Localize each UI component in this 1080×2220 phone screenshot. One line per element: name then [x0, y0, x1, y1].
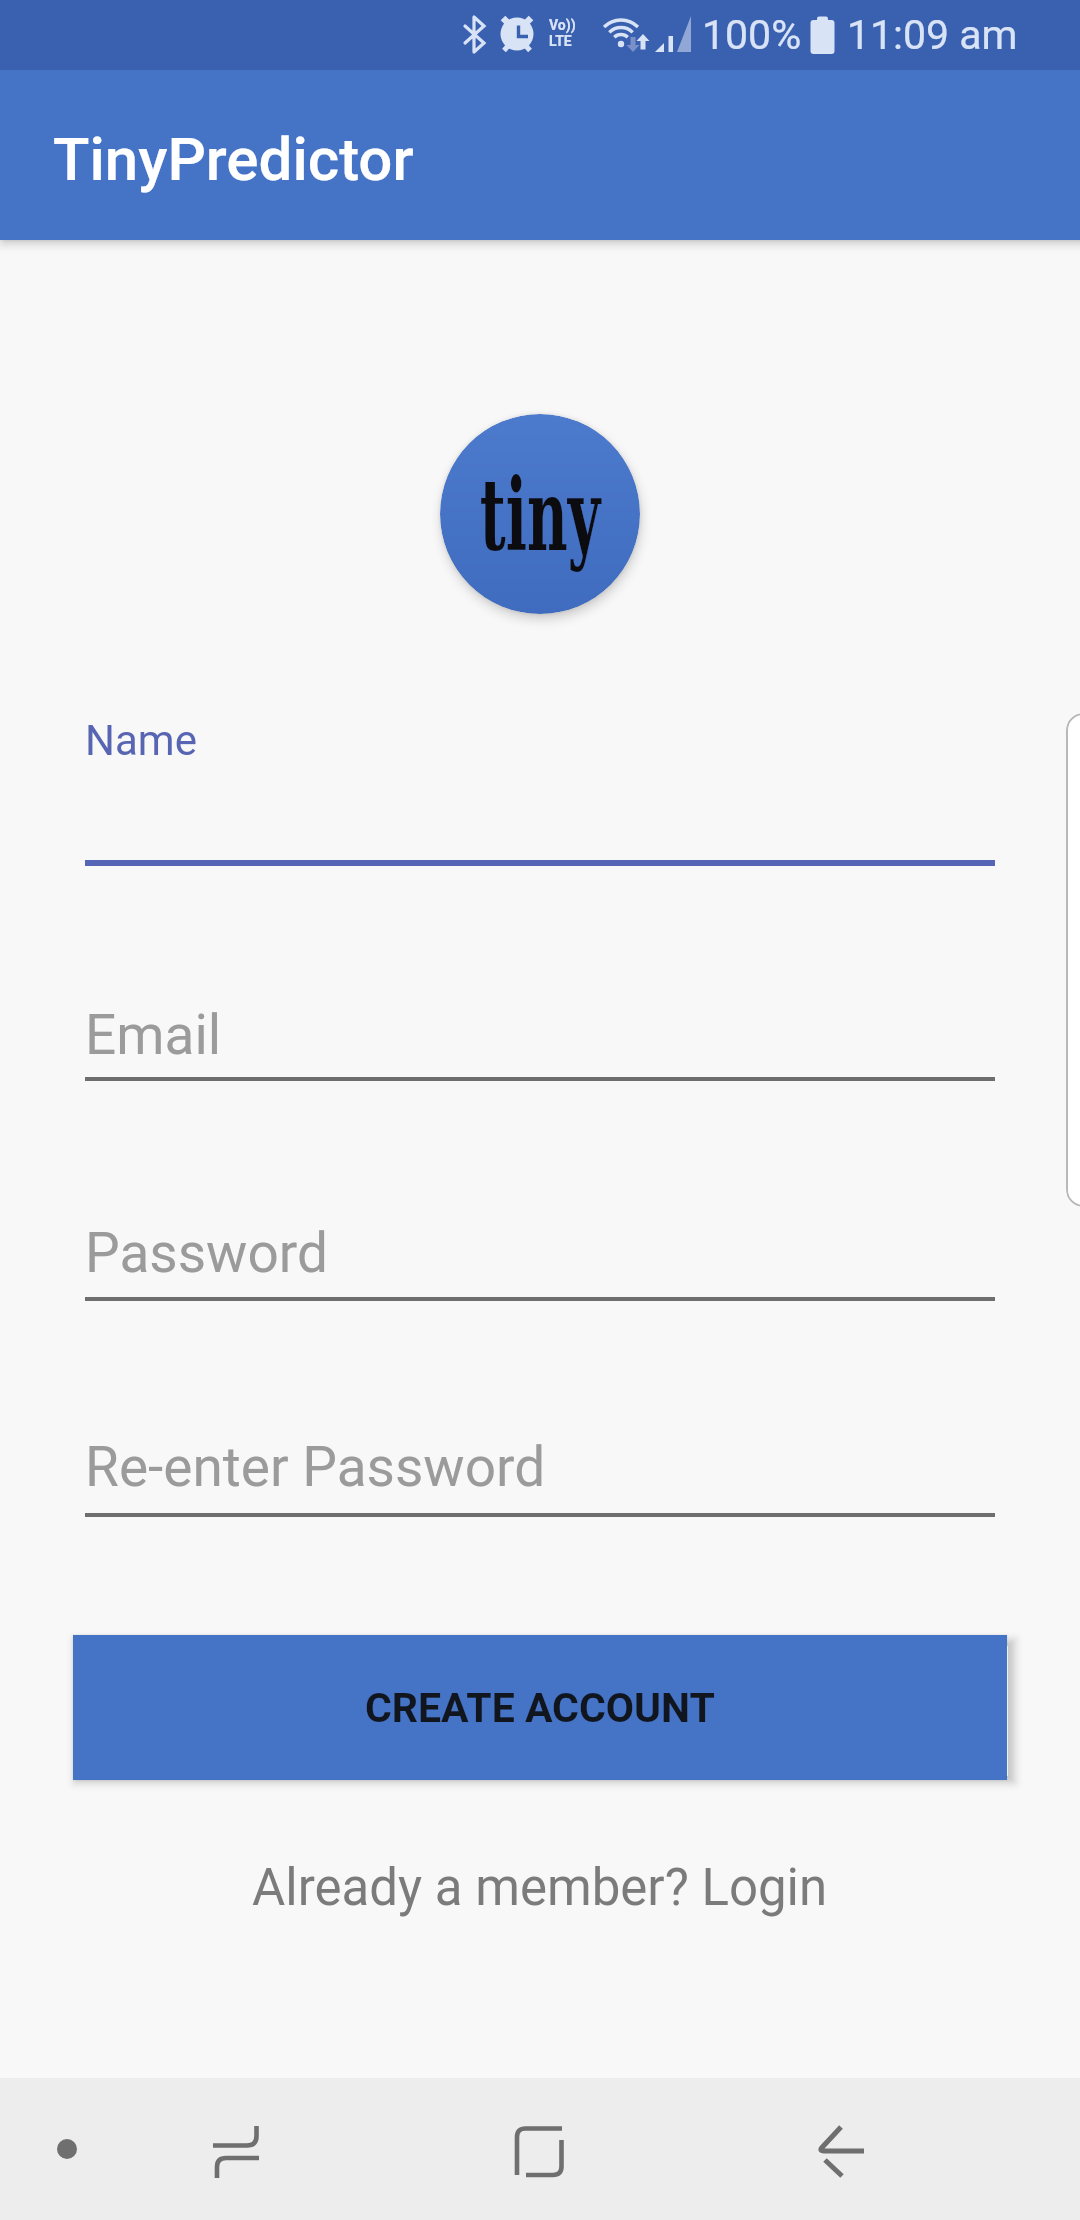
staticText: 11:09 am: [847, 11, 1018, 59]
staticText: CREATE ACCOUNT: [365, 1684, 715, 1732]
button[interactable]: [469, 2078, 609, 2220]
staticText: tiny: [456, 456, 624, 573]
staticText: Already a member? Login: [252, 1858, 828, 1918]
button[interactable]: Already a member? Login: [0, 1853, 1080, 1923]
button[interactable]: Re-enter Password: [85, 1432, 995, 1517]
staticText: Email: [85, 1003, 222, 1067]
staticText: 100%: [702, 11, 802, 59]
button[interactable]: Email: [85, 1000, 995, 1081]
button[interactable]: [166, 2078, 306, 2220]
staticText: TinyPredictor: [53, 124, 414, 194]
button[interactable]: [770, 2078, 910, 2220]
button[interactable]: CREATE ACCOUNT: [73, 1635, 1007, 1780]
button[interactable]: Password: [85, 1218, 995, 1301]
button[interactable]: Name: [85, 700, 995, 866]
staticText: Name: [85, 716, 197, 765]
staticText: Password: [85, 1221, 328, 1285]
staticText: Re-enter Password: [85, 1435, 546, 1499]
staticText: Vo)) LTE: [549, 17, 576, 49]
